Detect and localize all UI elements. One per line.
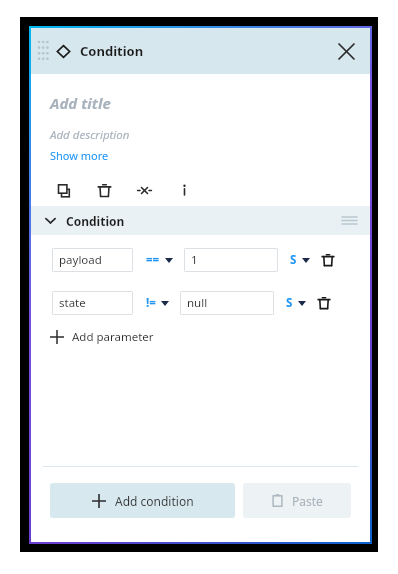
- staticText: 1: [191, 252, 198, 268]
- staticText: Add condition: [115, 493, 194, 509]
- button[interactable]: Add title: [50, 93, 111, 113]
- button[interactable]: ==: [146, 252, 173, 268]
- staticText: Add parameter: [72, 329, 154, 345]
- staticText: Paste: [292, 493, 323, 509]
- button[interactable]: Remove parameter: [315, 247, 341, 273]
- button[interactable]: Show more: [50, 148, 109, 163]
- staticText: Condition: [66, 213, 125, 229]
- staticText: Condition: [80, 42, 144, 60]
- button[interactable]: Add parameter: [50, 329, 154, 345]
- staticText: S: [290, 252, 297, 268]
- staticText: !=: [146, 295, 156, 311]
- button[interactable]: Add description: [50, 127, 130, 143]
- button[interactable]: Duplicate: [44, 174, 84, 206]
- button[interactable]: Condition: [31, 206, 370, 235]
- button[interactable]: Disable: [124, 174, 164, 206]
- button[interactable]: 1: [184, 248, 278, 272]
- button[interactable]: Remove parameter: [311, 290, 337, 316]
- button[interactable]: Delete: [84, 174, 124, 206]
- button[interactable]: S: [286, 295, 306, 311]
- button[interactable]: state: [52, 291, 133, 315]
- button[interactable]: Close: [326, 31, 366, 71]
- button[interactable]: payload: [52, 248, 133, 272]
- button[interactable]: Paste: [243, 483, 351, 518]
- staticText: S: [286, 295, 293, 311]
- button[interactable]: null: [180, 291, 274, 315]
- button[interactable]: Reorder: [334, 206, 364, 235]
- staticText: state: [59, 295, 86, 311]
- staticText: payload: [59, 252, 102, 268]
- staticText: ==: [146, 252, 160, 268]
- button[interactable]: S: [290, 252, 310, 268]
- button[interactable]: !=: [146, 295, 169, 311]
- button[interactable]: Add condition: [50, 483, 235, 518]
- button[interactable]: Info: [164, 174, 204, 206]
- staticText: null: [187, 295, 208, 311]
